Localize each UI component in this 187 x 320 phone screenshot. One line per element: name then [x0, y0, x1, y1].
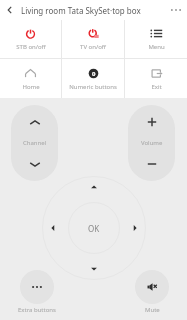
staticText: Home — [22, 83, 40, 91]
button[interactable]: Exit — [125, 59, 187, 98]
staticText: Living room Tata SkySet·top box — [21, 5, 141, 16]
button[interactable]: Down — [81, 258, 107, 280]
staticText: Menu — [148, 43, 165, 51]
staticText: Volume — [141, 139, 163, 147]
button[interactable]: Left — [42, 215, 64, 241]
button[interactable]: TV on/off — [62, 20, 124, 58]
button[interactable]: Mute — [135, 270, 169, 314]
button[interactable]: Right — [124, 215, 146, 241]
button[interactable]: Back — [0, 0, 20, 20]
staticText: Numeric buttons — [69, 83, 117, 91]
staticText: Mute — [145, 306, 160, 314]
button[interactable]: STB on/off — [0, 20, 61, 58]
button[interactable]: Up — [81, 176, 107, 198]
button[interactable]: Channel up — [11, 105, 58, 139]
staticText: Exit — [151, 83, 162, 91]
staticText: STB on/off — [16, 43, 46, 51]
staticText: 0 — [92, 70, 96, 78]
button[interactable]: Extra buttons — [18, 270, 56, 314]
button[interactable]: 0 — [62, 59, 124, 98]
button[interactable]: OK — [68, 202, 120, 254]
button[interactable]: Home — [0, 59, 61, 98]
button[interactable]: Volume up — [128, 105, 175, 139]
button[interactable]: Volume down — [128, 147, 175, 181]
staticText: Channel — [23, 139, 47, 147]
staticText: TV on/off — [80, 43, 106, 51]
button[interactable]: Menu — [125, 20, 187, 58]
button[interactable]: Channel down — [11, 147, 58, 181]
staticText: OK — [88, 223, 100, 234]
staticText: Extra buttons — [18, 306, 56, 314]
button[interactable]: More options — [165, 0, 187, 20]
